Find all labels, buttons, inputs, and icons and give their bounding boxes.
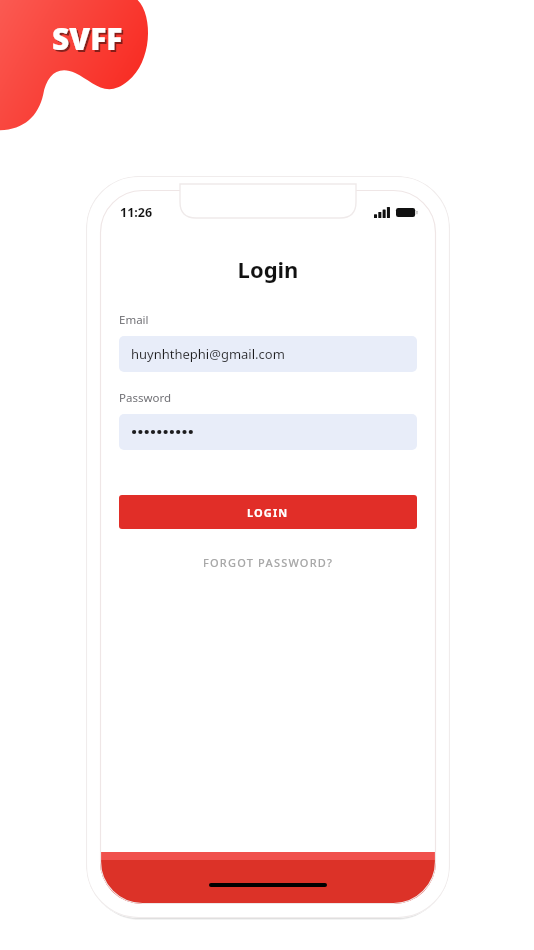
- staticText: SVFF: [54, 20, 125, 61]
- staticText: 11:26: [120, 204, 153, 221]
- staticText: Password: [119, 390, 172, 406]
- button[interactable]: huynhthephi@gmail.com: [119, 336, 417, 372]
- staticText: huynhthephi@gmail.com: [131, 345, 285, 363]
- button[interactable]: [119, 414, 417, 450]
- staticText: LOGIN: [247, 505, 289, 520]
- button[interactable]: LOGIN: [119, 495, 417, 529]
- staticText: Email: [119, 312, 149, 328]
- button[interactable]: FORGOT PASSWORD?: [119, 551, 417, 573]
- staticText: Login: [100, 254, 436, 284]
- staticText: SVFF: [52, 18, 123, 59]
- staticText: FORGOT PASSWORD?: [203, 555, 334, 570]
